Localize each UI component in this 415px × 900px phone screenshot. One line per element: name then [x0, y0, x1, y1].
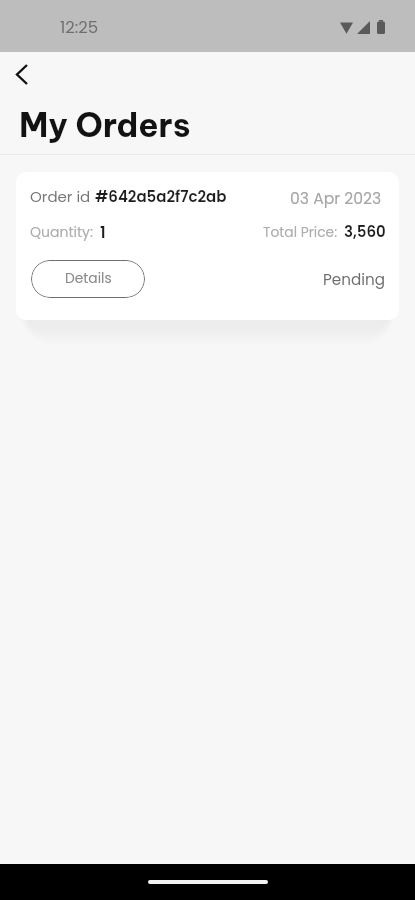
button[interactable]: Back — [2, 55, 41, 94]
button[interactable]: Order id — [16, 172, 399, 320]
staticText: Quantity: — [30, 225, 93, 242]
staticText: 1 — [100, 224, 106, 243]
staticText: My Orders — [19, 106, 191, 146]
staticText: 3,560 — [344, 224, 386, 242]
staticText: Total Price: — [263, 225, 338, 242]
staticText: Pending — [323, 272, 385, 290]
staticText: 03 Apr 2023 — [290, 190, 382, 209]
staticText: #642a5a2f7c2ab — [95, 189, 227, 207]
staticText: 12:25 — [60, 18, 99, 38]
staticText: Details — [65, 271, 112, 288]
staticText: Order id — [30, 189, 95, 207]
button[interactable]: Details — [31, 260, 145, 298]
